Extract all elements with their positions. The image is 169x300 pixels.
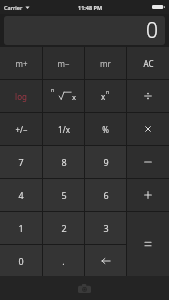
button[interactable]: 0 <box>0 245 42 276</box>
button[interactable]: x to the power n <box>85 80 126 112</box>
staticText: +/− <box>15 124 28 135</box>
button[interactable]: Plus <box>127 179 169 211</box>
staticText: 0 <box>18 255 24 267</box>
button[interactable]: mr <box>85 47 126 79</box>
button[interactable]: AC <box>127 47 169 79</box>
button[interactable]: % <box>85 113 126 145</box>
staticText: log <box>15 91 27 102</box>
button[interactable]: Equals <box>127 212 169 276</box>
staticText: % <box>102 124 109 135</box>
staticText: m+ <box>15 58 28 69</box>
staticText: x <box>101 91 106 102</box>
staticText: Carrier <box>4 4 23 11</box>
button[interactable]: 3 <box>85 212 126 244</box>
button[interactable]: 2 <box>43 212 84 244</box>
button[interactable]: 5 <box>43 179 84 211</box>
staticText: 8 <box>61 156 67 168</box>
staticText: mr <box>100 58 111 69</box>
staticText: m− <box>57 58 70 69</box>
staticText: 1/x <box>58 124 70 135</box>
button[interactable]: 6 <box>85 179 126 211</box>
staticText: . <box>62 255 65 267</box>
staticText: 9 <box>103 156 109 168</box>
button[interactable]: m− <box>43 47 84 79</box>
staticText: 11:48 PM <box>78 4 103 11</box>
staticText: 5 <box>61 189 67 201</box>
button[interactable]: Divide <box>127 80 169 112</box>
staticText: AC <box>143 58 154 69</box>
button[interactable]: 1 <box>0 212 42 244</box>
button[interactable]: Multiply <box>127 113 169 145</box>
button[interactable]: . <box>43 245 84 276</box>
button[interactable]: Backspace <box>85 245 126 276</box>
staticText: 4 <box>18 189 24 201</box>
button[interactable]: nth root of x <box>43 80 84 112</box>
staticText: 6 <box>103 189 109 201</box>
staticText: 2 <box>61 222 67 234</box>
staticText: 0 <box>146 16 158 44</box>
staticText: 1 <box>18 222 24 234</box>
staticText: n <box>51 87 55 94</box>
button[interactable]: 9 <box>85 146 126 178</box>
button[interactable]: Minus <box>127 146 169 178</box>
button[interactable]: 7 <box>0 146 42 178</box>
staticText: x <box>72 92 76 102</box>
staticText: 7 <box>18 156 24 168</box>
button[interactable]: 8 <box>43 146 84 178</box>
button[interactable]: +/− <box>0 113 42 145</box>
button[interactable]: 4 <box>0 179 42 211</box>
button[interactable]: m+ <box>0 47 42 79</box>
button[interactable]: 1/x <box>43 113 84 145</box>
staticText: 3 <box>103 222 109 234</box>
button[interactable]: log <box>0 80 42 112</box>
staticText: n <box>106 89 110 96</box>
